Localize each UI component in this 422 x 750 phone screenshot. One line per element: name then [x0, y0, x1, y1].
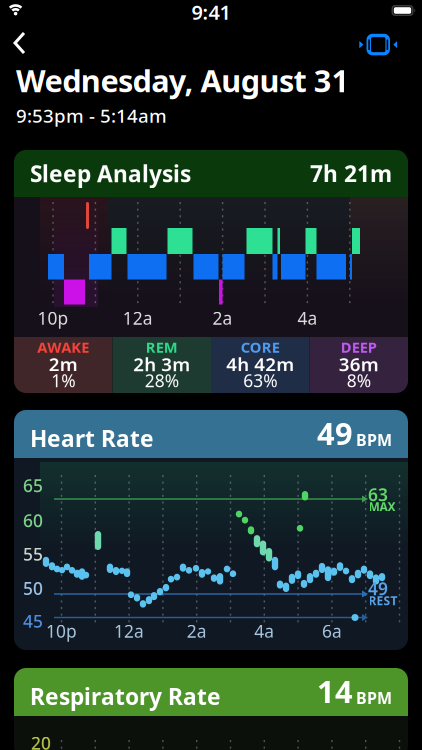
- staticText: 20: [31, 731, 51, 750]
- staticText: 4a: [254, 619, 274, 642]
- staticText: 14: [317, 671, 353, 711]
- staticText: Respiratory Rate: [30, 681, 221, 711]
- staticText: 10p: [46, 619, 77, 642]
- staticText: BPM: [356, 687, 392, 708]
- staticText: BPM: [356, 429, 392, 450]
- staticText: 8%: [347, 369, 371, 392]
- staticText: 7h 21m: [310, 158, 392, 188]
- staticText: Heart Rate: [30, 423, 154, 453]
- staticText: Wednesday, August 31: [16, 60, 349, 101]
- staticText: 65: [23, 474, 43, 497]
- staticText: 45: [23, 609, 43, 632]
- staticText: Sleep Analysis: [30, 158, 191, 188]
- staticText: 10p: [37, 306, 68, 329]
- staticText: MAX: [368, 498, 395, 514]
- staticText: AWAKE: [37, 337, 89, 357]
- staticText: DEEP: [341, 337, 377, 357]
- button[interactable]: [0, 0, 44, 44]
- staticText: 55: [23, 542, 43, 565]
- staticText: 4a: [297, 306, 317, 329]
- staticText: 2h 3m: [133, 352, 190, 376]
- staticText: 50: [23, 577, 43, 600]
- staticText: 12a: [123, 306, 153, 329]
- staticText: 63: [368, 483, 388, 506]
- staticText: 49: [368, 577, 388, 600]
- staticText: 9:41: [191, 0, 230, 25]
- staticText: 49: [317, 413, 353, 453]
- button[interactable]: [350, 26, 400, 62]
- staticText: 12a: [114, 619, 144, 642]
- staticText: CORE: [241, 337, 280, 357]
- staticText: 2a: [213, 306, 233, 329]
- staticText: REM: [146, 337, 178, 357]
- staticText: 4h 42m: [226, 352, 294, 376]
- staticText: 2m: [49, 352, 78, 376]
- staticText: 9:53pm - 5:14am: [16, 103, 167, 128]
- staticText: 1%: [51, 369, 75, 392]
- staticText: 6a: [322, 619, 342, 642]
- staticText: 28%: [145, 369, 179, 392]
- staticText: REST: [368, 592, 397, 608]
- staticText: 2a: [187, 619, 207, 642]
- staticText: 36m: [339, 352, 379, 376]
- staticText: 60: [23, 509, 43, 532]
- staticText: 63%: [243, 369, 277, 392]
